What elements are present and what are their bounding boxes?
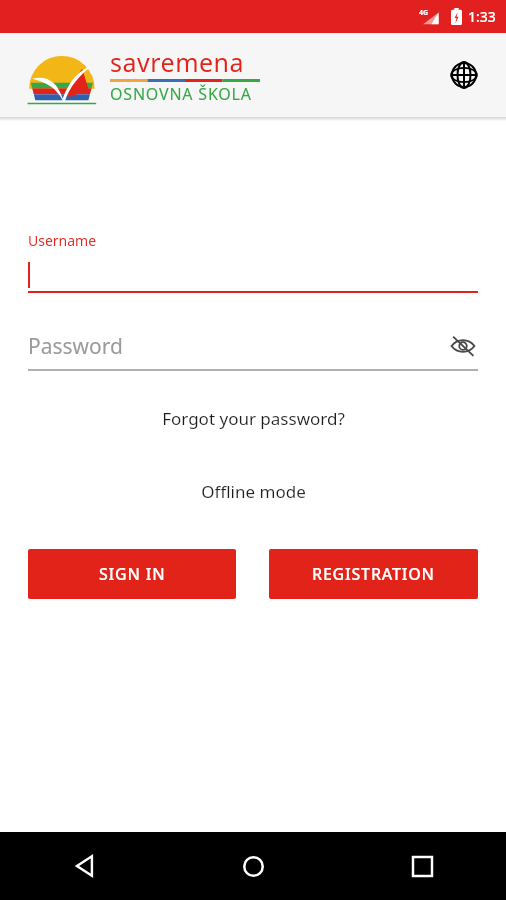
button[interactable]: Show password [448, 331, 478, 361]
button[interactable]: Home [229, 842, 277, 890]
button[interactable]: Offline mode [0, 480, 506, 503]
button[interactable]: Username [28, 231, 478, 293]
staticText: 1:33 [468, 7, 496, 26]
button[interactable]: Change language [442, 53, 486, 97]
button[interactable]: Back [60, 842, 108, 890]
button[interactable]: Password [28, 331, 478, 371]
staticText: Forgot your password? [162, 407, 345, 430]
staticText: SIGN IN [99, 563, 166, 585]
staticText: Username [28, 231, 97, 250]
button[interactable]: SIGN IN [28, 549, 236, 599]
button[interactable]: Forgot your password? [0, 407, 506, 430]
staticText: Password [28, 332, 448, 361]
staticText: savremena [110, 45, 245, 79]
button[interactable]: Recent apps [398, 842, 446, 890]
staticText: Offline mode [201, 480, 306, 503]
staticText: REGISTRATION [312, 563, 435, 585]
button[interactable]: REGISTRATION [269, 549, 478, 599]
staticText: 4G [419, 8, 429, 18]
staticText: OSNOVNA ŠKOLA [110, 83, 252, 105]
